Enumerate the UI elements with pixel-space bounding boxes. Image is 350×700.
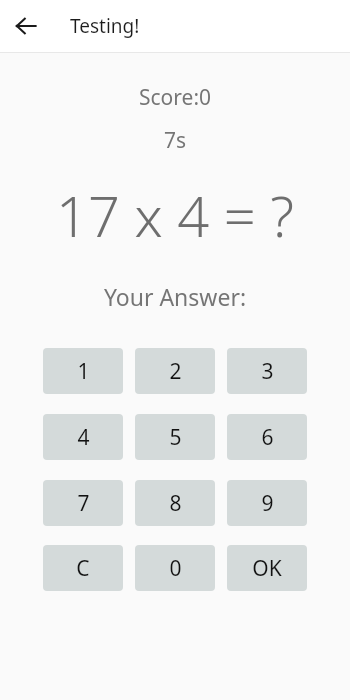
button[interactable]: 7 <box>43 480 123 526</box>
staticText: 9 <box>261 489 274 518</box>
staticText: 5 <box>169 423 182 452</box>
staticText: Score:0 <box>0 83 350 112</box>
staticText: Your Answer: <box>0 281 350 312</box>
button[interactable]: C <box>43 545 123 591</box>
button[interactable]: 3 <box>227 348 307 394</box>
staticText: 8 <box>169 489 182 518</box>
staticText: 4 <box>77 423 90 452</box>
button[interactable]: 4 <box>43 414 123 460</box>
button[interactable]: Back <box>8 8 44 44</box>
staticText: C <box>76 554 90 583</box>
button[interactable]: 8 <box>135 480 215 526</box>
button[interactable]: 5 <box>135 414 215 460</box>
staticText: 6 <box>261 423 274 452</box>
staticText: 1 <box>77 357 90 386</box>
button[interactable]: 2 <box>135 348 215 394</box>
staticText: 7 <box>77 489 90 518</box>
staticText: 17 x 4 = ? <box>0 177 350 253</box>
button[interactable]: 1 <box>43 348 123 394</box>
button[interactable]: OK <box>227 545 307 591</box>
staticText: Testing! <box>70 13 140 39</box>
button[interactable]: 6 <box>227 414 307 460</box>
staticText: 0 <box>169 554 182 583</box>
staticText: 2 <box>169 357 182 386</box>
button[interactable]: 0 <box>135 545 215 591</box>
staticText: 3 <box>261 357 274 386</box>
staticText: OK <box>252 554 282 583</box>
button[interactable]: 9 <box>227 480 307 526</box>
staticText: 7s <box>0 126 350 155</box>
